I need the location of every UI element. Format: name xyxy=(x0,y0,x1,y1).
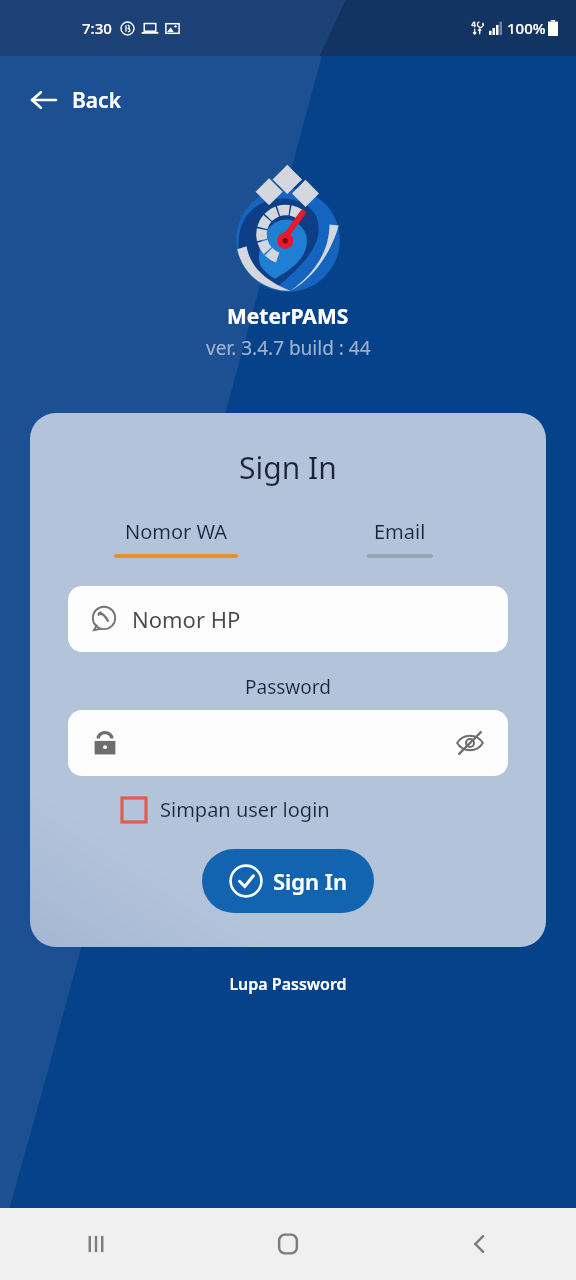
staticText: 7:30 xyxy=(82,18,112,38)
button[interactable]: Show password xyxy=(454,727,486,759)
staticText: MeterPAMS xyxy=(227,302,349,331)
staticText: ver. 3.4.7 build : 44 xyxy=(206,335,371,361)
staticText: Password xyxy=(245,674,331,700)
button[interactable]: Email xyxy=(288,518,512,558)
button[interactable]: Nomor HP xyxy=(68,586,508,652)
staticText: 100% xyxy=(507,18,546,38)
button[interactable]: Sign In xyxy=(202,849,374,913)
staticText: Sign In xyxy=(273,866,348,896)
button[interactable]: Recent apps xyxy=(0,1208,192,1280)
staticText: Nomor HP xyxy=(132,604,241,634)
button[interactable]: Show password xyxy=(68,710,508,776)
button[interactable]: Back xyxy=(384,1208,576,1280)
staticText: Simpan user login xyxy=(160,796,330,823)
button[interactable]: Simpan user login xyxy=(122,796,546,823)
button[interactable]: Home xyxy=(192,1208,384,1280)
staticText: Back xyxy=(72,86,122,115)
button[interactable]: Nomor WA xyxy=(64,518,288,558)
staticText: Sign In xyxy=(239,447,337,488)
staticText: Email xyxy=(374,518,426,545)
button[interactable]: Back xyxy=(0,56,576,144)
button[interactable]: Lupa Password xyxy=(0,967,576,1001)
other: Back xyxy=(30,87,56,113)
staticText: Nomor WA xyxy=(125,518,228,545)
